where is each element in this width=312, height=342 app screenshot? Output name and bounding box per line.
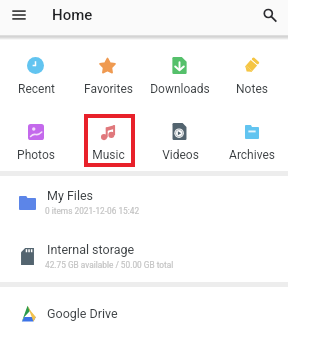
button[interactable]: Menu (7, 3, 31, 27)
staticText: Music (92, 148, 125, 162)
staticText: Home (52, 6, 93, 24)
staticText: Downloads (150, 82, 210, 96)
button[interactable]: Videos (144, 112, 216, 165)
button[interactable]: Recent (0, 46, 72, 99)
button[interactable]: Archives (216, 112, 288, 165)
button[interactable]: Google Drive (0, 304, 288, 338)
staticText: Google Drive (47, 306, 118, 321)
staticText: Recent (18, 82, 55, 96)
staticText: My Files (47, 188, 93, 203)
staticText: 42.75 GB available / 50.00 GB total (45, 260, 174, 270)
button[interactable]: Downloads (144, 46, 216, 99)
staticText: 0 items 2021-12-06 15:42 (45, 206, 140, 216)
button[interactable]: Notes (216, 46, 288, 99)
button[interactable]: Favorites (72, 46, 144, 99)
button[interactable]: My Files (0, 186, 288, 220)
button[interactable]: Music (72, 112, 144, 165)
button[interactable]: Search (256, 2, 280, 26)
staticText: Videos (162, 148, 199, 162)
staticText: Internal storage (47, 242, 135, 257)
staticText: Archives (229, 148, 275, 162)
button[interactable]: Photos (0, 112, 72, 165)
staticText: Favorites (84, 82, 133, 96)
staticText: Photos (17, 148, 55, 162)
staticText: Notes (236, 82, 268, 96)
button[interactable]: Internal storage (0, 240, 288, 274)
